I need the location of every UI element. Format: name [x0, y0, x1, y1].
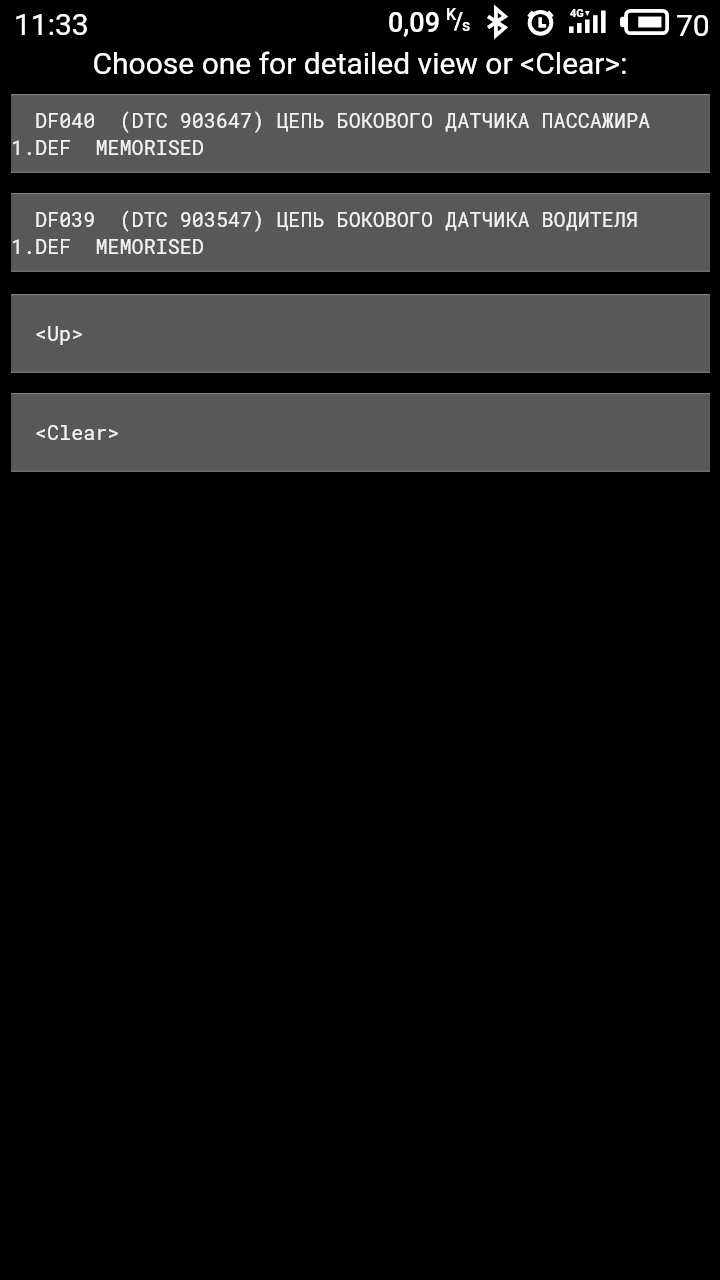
- staticText: K: [446, 5, 457, 24]
- staticText: DF040 (DTC 903647) ЦЕПЬ БОКОВОГО ДАТЧИКА…: [11, 107, 651, 134]
- staticText: s: [462, 16, 471, 35]
- button[interactable]: <Up>: [11, 294, 710, 373]
- staticText: Choose one for detailed view or <Clear>:: [0, 46, 720, 81]
- staticText: DF039 (DTC 903547) ЦЕПЬ БОКОВОГО ДАТЧИКА…: [11, 206, 639, 233]
- button[interactable]: <Clear>: [11, 393, 710, 472]
- staticText: 11:33: [14, 7, 89, 42]
- other: Battery: [620, 9, 669, 35]
- staticText: 0,09: [388, 7, 440, 39]
- staticText: 1.DEF MEMORISED: [11, 134, 204, 161]
- other: Bluetooth: [487, 8, 506, 36]
- staticText: 1.DEF MEMORISED: [11, 233, 204, 260]
- button[interactable]: DF039 (DTC 903547) ЦЕПЬ БОКОВОГО ДАТЧИКА…: [11, 193, 710, 272]
- staticText: <Up>: [35, 320, 84, 347]
- button[interactable]: DF040 (DTC 903647) ЦЕПЬ БОКОВОГО ДАТЧИКА…: [11, 94, 710, 173]
- other: Mobile signal 4G: [569, 9, 607, 33]
- staticText: <Clear>: [35, 419, 120, 446]
- other: Alarm: [526, 7, 555, 36]
- staticText: /: [454, 8, 464, 35]
- staticText: 4G: [570, 7, 584, 20]
- staticText: 70: [676, 8, 710, 43]
